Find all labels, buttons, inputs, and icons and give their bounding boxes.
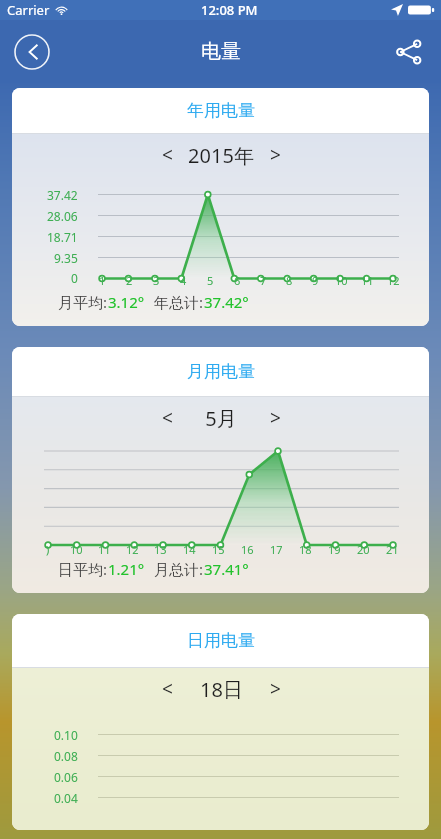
staticText: 5月 xyxy=(205,405,237,432)
staticText: 16 xyxy=(241,542,254,557)
button[interactable]: Share xyxy=(389,32,429,72)
staticText: > xyxy=(270,142,281,168)
staticText: 20 xyxy=(357,542,370,557)
button[interactable]: Next xyxy=(258,672,292,706)
staticText: 28.06 xyxy=(47,208,78,224)
button[interactable]: 日用电量 xyxy=(12,614,429,667)
staticText: 0.06 xyxy=(54,769,78,785)
staticText: 7 xyxy=(260,273,267,288)
button[interactable]: 月用电量 xyxy=(12,347,429,396)
staticText: 15 xyxy=(212,542,225,557)
staticText: 18.71 xyxy=(47,229,78,245)
staticText: 14 xyxy=(183,542,196,557)
staticText: 9.35 xyxy=(54,250,78,266)
button[interactable]: Previous xyxy=(150,138,184,172)
staticText: 0.08 xyxy=(54,748,78,764)
staticText: > xyxy=(270,676,281,702)
staticText: 10 xyxy=(70,542,83,557)
staticText: 0.10 xyxy=(54,727,78,743)
button[interactable]: 年用电量 xyxy=(12,88,429,133)
staticText: 8 xyxy=(286,273,293,288)
staticText: 17 xyxy=(270,542,283,557)
staticText: 12:08 PM xyxy=(201,1,258,19)
staticText: 37.42 xyxy=(47,187,78,203)
staticText: 年总计: xyxy=(154,292,204,312)
staticText: 5 xyxy=(207,273,214,288)
staticText: 3 xyxy=(153,273,160,288)
staticText: 日平均: xyxy=(58,559,108,579)
button[interactable]: Next xyxy=(258,138,292,172)
staticText: 2015年 xyxy=(188,142,254,169)
button[interactable]: Back xyxy=(14,34,50,70)
staticText: 9 xyxy=(312,273,319,288)
staticText: 年用电量 xyxy=(187,100,255,121)
staticText: < xyxy=(162,405,173,431)
staticText: 6 xyxy=(234,273,241,288)
staticText: 13 xyxy=(154,542,167,557)
staticText: 12 xyxy=(387,273,400,288)
staticText: 0.04 xyxy=(54,790,78,806)
staticText: 电量 xyxy=(201,39,241,64)
button[interactable]: Previous xyxy=(150,672,184,706)
staticText: < xyxy=(162,676,173,702)
staticText: 1.21° xyxy=(108,559,145,579)
staticText: 1 xyxy=(99,273,106,288)
staticText: 37.42° xyxy=(204,292,249,312)
staticText: 11 xyxy=(361,273,374,288)
staticText: 4 xyxy=(180,273,187,288)
staticText: 21 xyxy=(386,542,399,557)
staticText: 11 xyxy=(98,542,111,557)
staticText: 12 xyxy=(126,542,139,557)
staticText: > xyxy=(270,405,281,431)
staticText: 2 xyxy=(126,273,133,288)
staticText: 月用电量 xyxy=(187,361,255,382)
staticText: 0 xyxy=(71,270,78,286)
staticText: < xyxy=(162,142,173,168)
staticText: 37.41° xyxy=(204,559,249,579)
staticText: 3.12° xyxy=(108,292,145,312)
staticText: 18日 xyxy=(200,676,243,703)
staticText: ) xyxy=(46,542,50,557)
staticText: Carrier xyxy=(7,1,50,19)
staticText: 日用电量 xyxy=(187,630,255,651)
staticText: 10 xyxy=(335,273,348,288)
button[interactable]: Next xyxy=(258,401,292,435)
button[interactable]: Previous xyxy=(150,401,184,435)
staticText: 19 xyxy=(328,542,341,557)
staticText: 月总计: xyxy=(154,559,204,579)
staticText: 18 xyxy=(299,542,312,557)
staticText: 月平均: xyxy=(58,292,108,312)
